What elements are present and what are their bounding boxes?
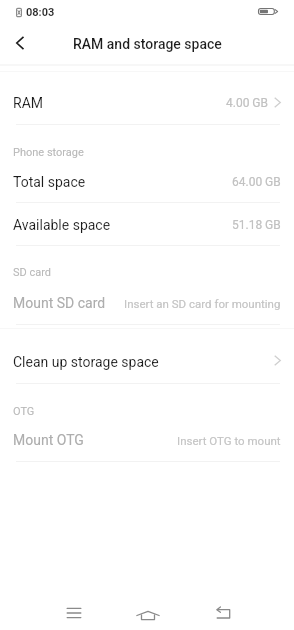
staticText: Mount SD card <box>13 295 106 311</box>
staticText: Available space <box>13 217 111 233</box>
staticText: Phone storage <box>13 146 84 159</box>
button[interactable]: Mount SD card <box>0 280 294 324</box>
staticText: Insert an SD card for mounting <box>124 297 281 310</box>
staticText: SD card <box>13 266 52 279</box>
button[interactable]: Back <box>0 23 40 63</box>
staticText: 64.00 GB <box>232 175 281 189</box>
button[interactable]: Back <box>200 590 247 630</box>
button[interactable]: Recent apps <box>50 590 97 630</box>
button[interactable]: Clean up storage space <box>0 338 294 383</box>
button[interactable]: Total space <box>0 160 294 202</box>
staticText: 4.00 GB <box>226 96 269 110</box>
button[interactable]: Available space <box>0 203 294 245</box>
staticText: RAM and storage space <box>73 36 222 52</box>
staticText: Mount OTG <box>13 432 84 448</box>
button[interactable]: RAM <box>0 80 294 124</box>
staticText: Total space <box>13 174 86 190</box>
staticText: OTG <box>13 405 35 418</box>
button[interactable]: Home <box>124 590 171 630</box>
staticText: 51.18 GB <box>232 218 281 232</box>
staticText: RAM <box>13 95 43 111</box>
staticText: Insert OTG to mount <box>177 434 281 447</box>
button[interactable]: Mount OTG <box>0 417 294 461</box>
staticText: 08:03 <box>26 6 55 19</box>
staticText: Clean up storage space <box>13 354 159 370</box>
